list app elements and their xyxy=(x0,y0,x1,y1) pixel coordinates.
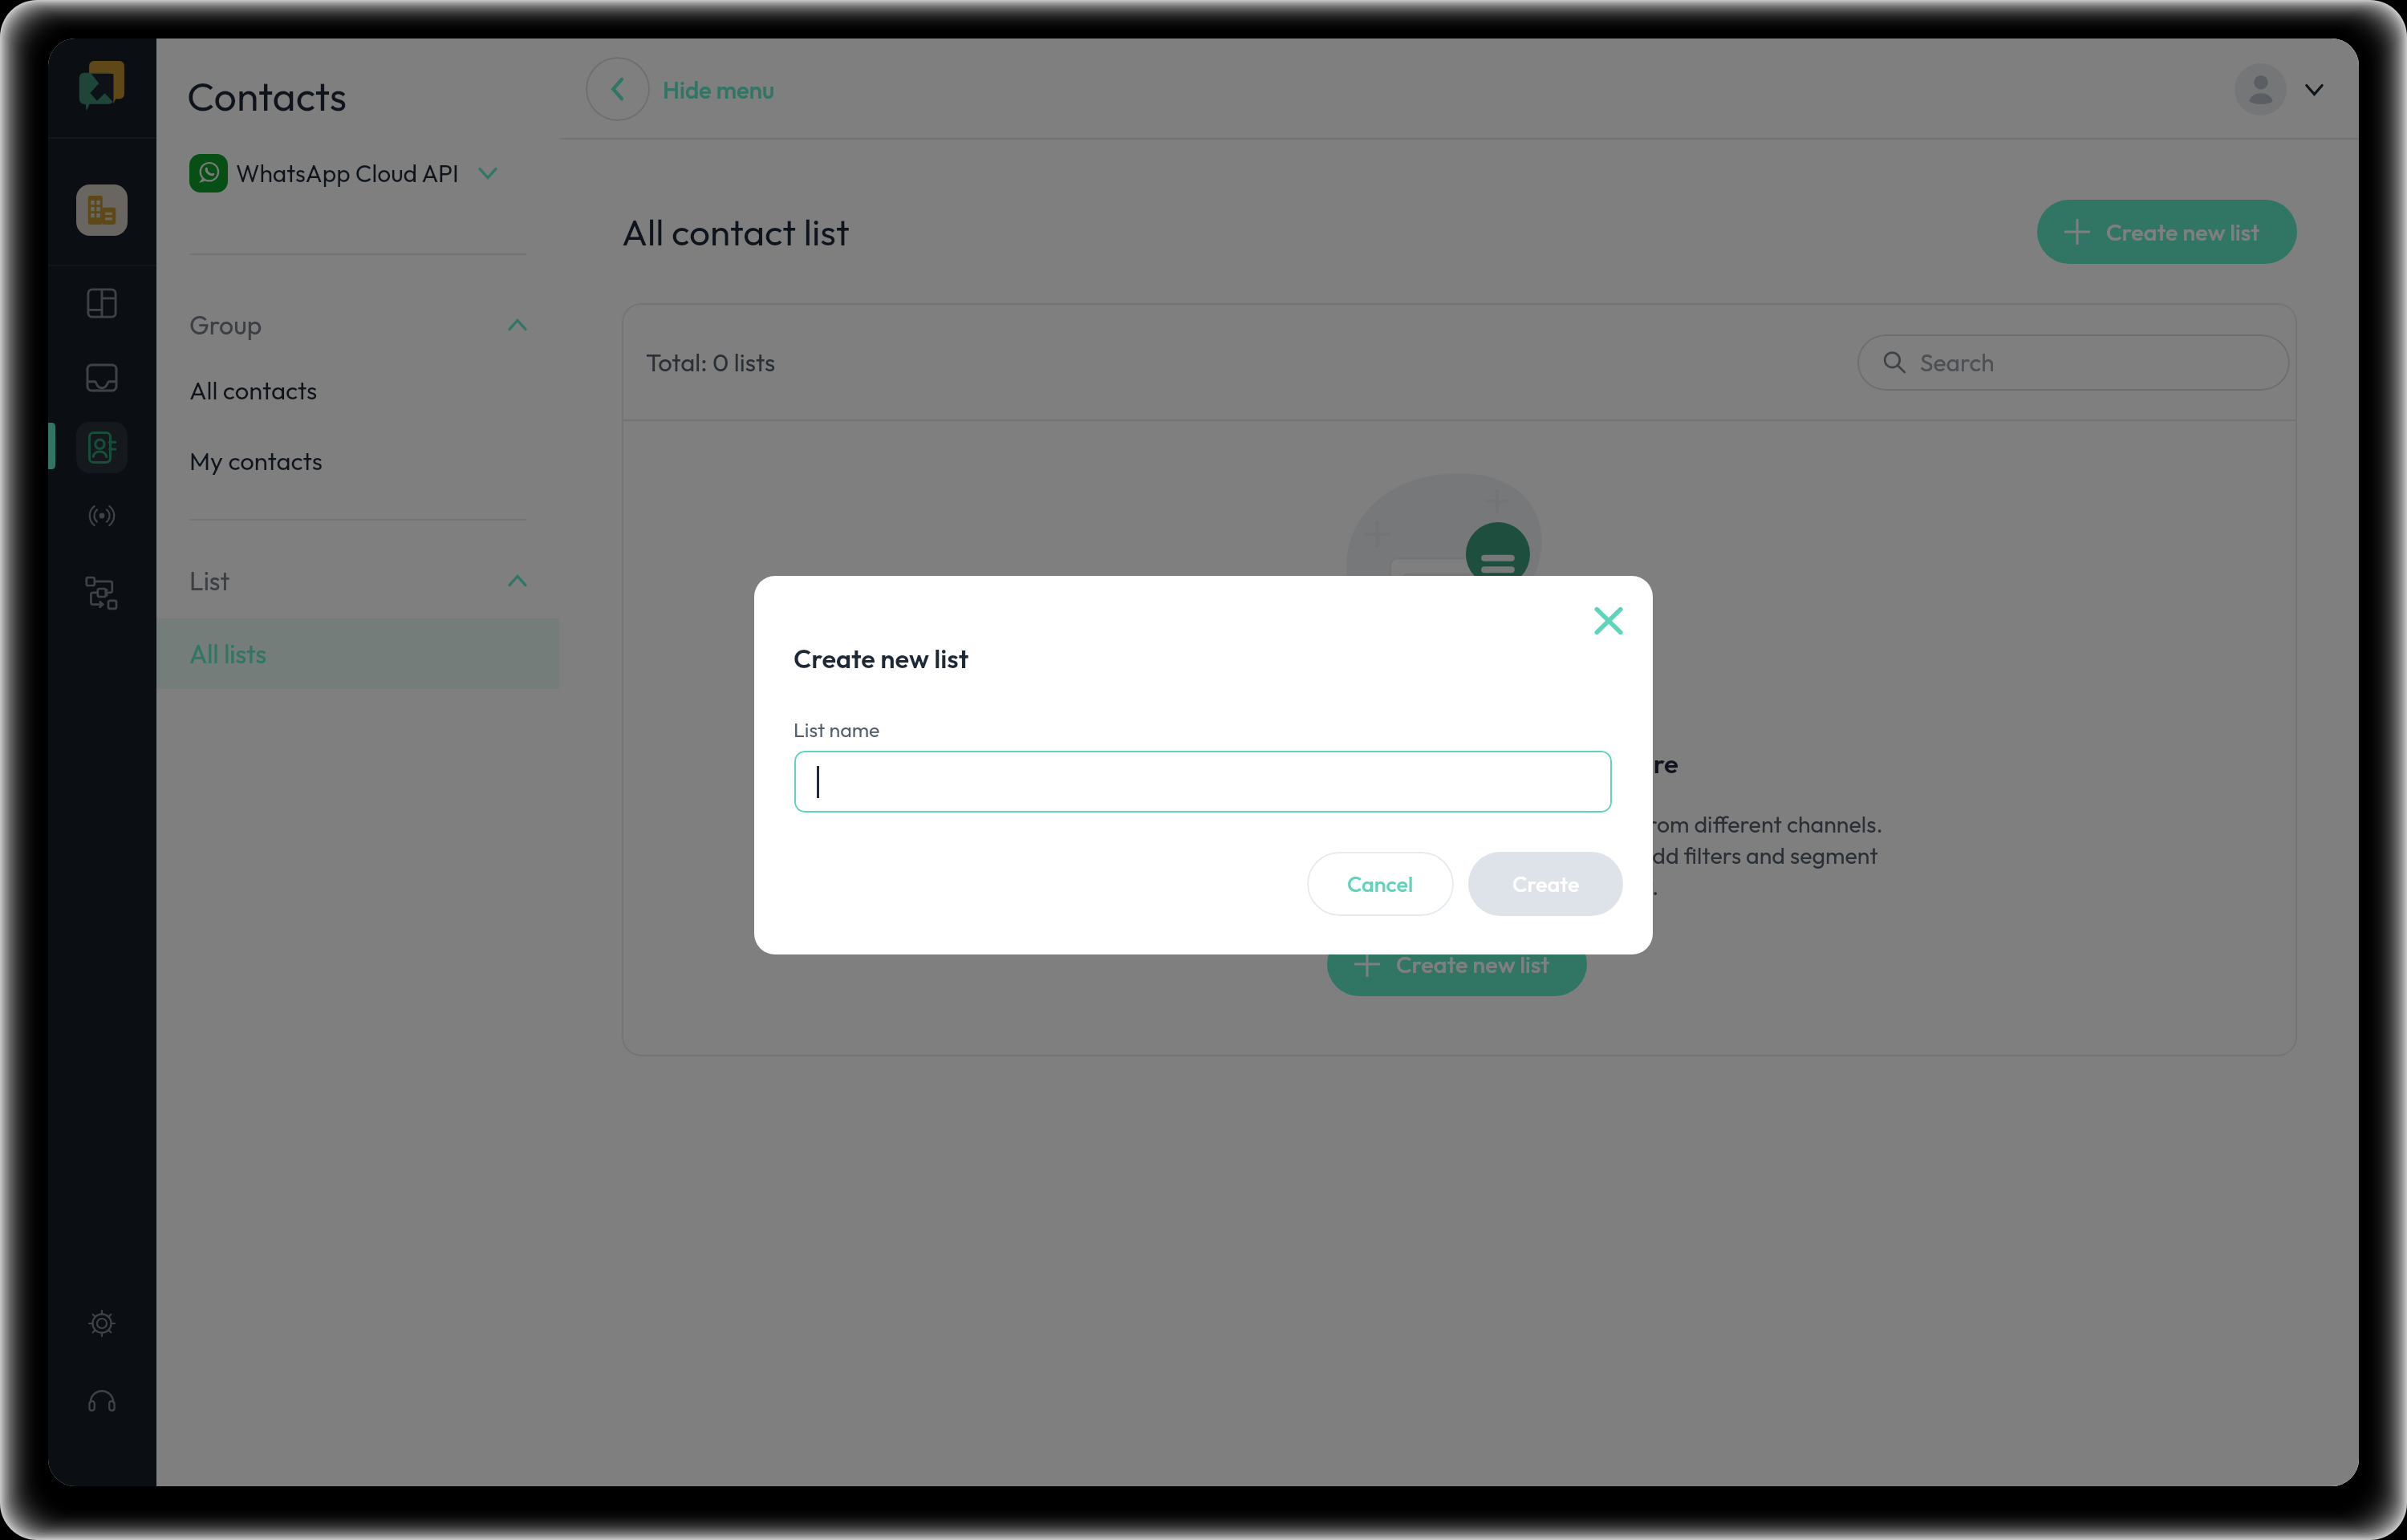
staticText: List name xyxy=(794,717,880,743)
staticText: WhatsApp Cloud API xyxy=(236,158,459,188)
button[interactable]: Account menu xyxy=(2234,63,2324,115)
button[interactable]: Close xyxy=(1581,593,1637,649)
staticText: Hide menu xyxy=(663,75,775,104)
staticText: List xyxy=(189,565,230,597)
button[interactable]: Contacts xyxy=(76,422,128,473)
staticText: Create new list xyxy=(2106,217,2260,247)
button[interactable]: Automation xyxy=(76,568,128,619)
staticText: Total: 0 lists xyxy=(646,346,776,378)
staticText: Search xyxy=(1920,347,1995,378)
button[interactable]: Workspace xyxy=(76,184,128,236)
button[interactable]: Broadcast xyxy=(76,490,128,541)
staticText: Group xyxy=(189,309,262,341)
button[interactable]: List xyxy=(189,560,527,602)
button[interactable]: Hide menu xyxy=(586,57,775,121)
button[interactable]: Search xyxy=(1857,334,2290,391)
staticText: Create xyxy=(1512,870,1580,898)
button[interactable]: Home xyxy=(73,56,131,114)
staticText: Cancel xyxy=(1347,870,1414,898)
button[interactable]: All contacts xyxy=(156,367,559,412)
staticText: You have no list here xyxy=(1437,747,1678,780)
button[interactable]: WhatsApp Cloud API xyxy=(189,151,497,196)
button[interactable]: Create xyxy=(1468,852,1623,916)
button[interactable]: Group xyxy=(189,304,527,346)
button[interactable]: Cancel xyxy=(1307,852,1454,916)
staticText: My contacts xyxy=(189,445,323,476)
button[interactable]: Support xyxy=(76,1375,128,1426)
staticText: All lists xyxy=(189,638,267,670)
staticText: Create new list xyxy=(794,642,969,675)
staticText: Create a new list to group your contacts… xyxy=(1232,809,1883,901)
button[interactable]: Settings xyxy=(76,1298,128,1349)
button[interactable]: Create new list xyxy=(1327,932,1587,996)
button[interactable]: All lists xyxy=(156,618,559,689)
staticText: All contact list xyxy=(622,209,850,255)
staticText: All contacts xyxy=(189,375,318,406)
staticText: Contacts xyxy=(187,71,347,121)
button[interactable]: Dashboard xyxy=(76,278,128,329)
staticText: Create new list xyxy=(1396,950,1550,979)
button[interactable]: My contacts xyxy=(156,438,559,483)
button[interactable]: Inbox xyxy=(76,352,128,403)
button[interactable]: Create new list xyxy=(2037,200,2297,264)
